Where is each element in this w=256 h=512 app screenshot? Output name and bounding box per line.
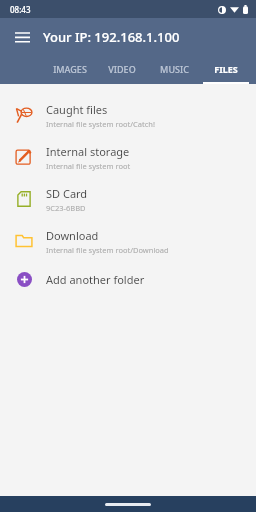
staticText: Add another folder: [46, 272, 145, 287]
button[interactable]: Home gesture bar: [105, 503, 151, 506]
staticText: MUSIC: [160, 63, 189, 75]
staticText: Internal file system root/Catch!: [46, 119, 155, 129]
staticText: 9C23-6BBD: [46, 203, 86, 213]
staticText: Internal file system root: [46, 161, 131, 171]
staticText: Download: [46, 228, 99, 243]
button[interactable]: VIDEO: [96, 56, 148, 84]
button[interactable]: Caught files: [0, 94, 256, 136]
staticText: Caught files: [46, 102, 108, 117]
staticText: FILES: [214, 63, 238, 75]
button[interactable]: FILES: [200, 56, 252, 84]
staticText: Internal file system root/Download: [46, 245, 169, 255]
button[interactable]: SD Card: [0, 178, 256, 220]
staticText: Your IP: 192.168.1.100: [43, 28, 180, 46]
button[interactable]: Add another folder: [0, 262, 256, 296]
staticText: IMAGES: [53, 63, 87, 75]
staticText: VIDEO: [108, 63, 136, 75]
button[interactable]: Internal storage: [0, 136, 256, 178]
button[interactable]: Open navigation menu: [5, 20, 39, 54]
button[interactable]: IMAGES: [44, 56, 96, 84]
button[interactable]: Download: [0, 220, 256, 262]
staticText: Internal storage: [46, 144, 130, 159]
button[interactable]: MUSIC: [148, 56, 200, 84]
staticText: 08:43: [10, 4, 31, 15]
staticText: SD Card: [46, 186, 88, 201]
